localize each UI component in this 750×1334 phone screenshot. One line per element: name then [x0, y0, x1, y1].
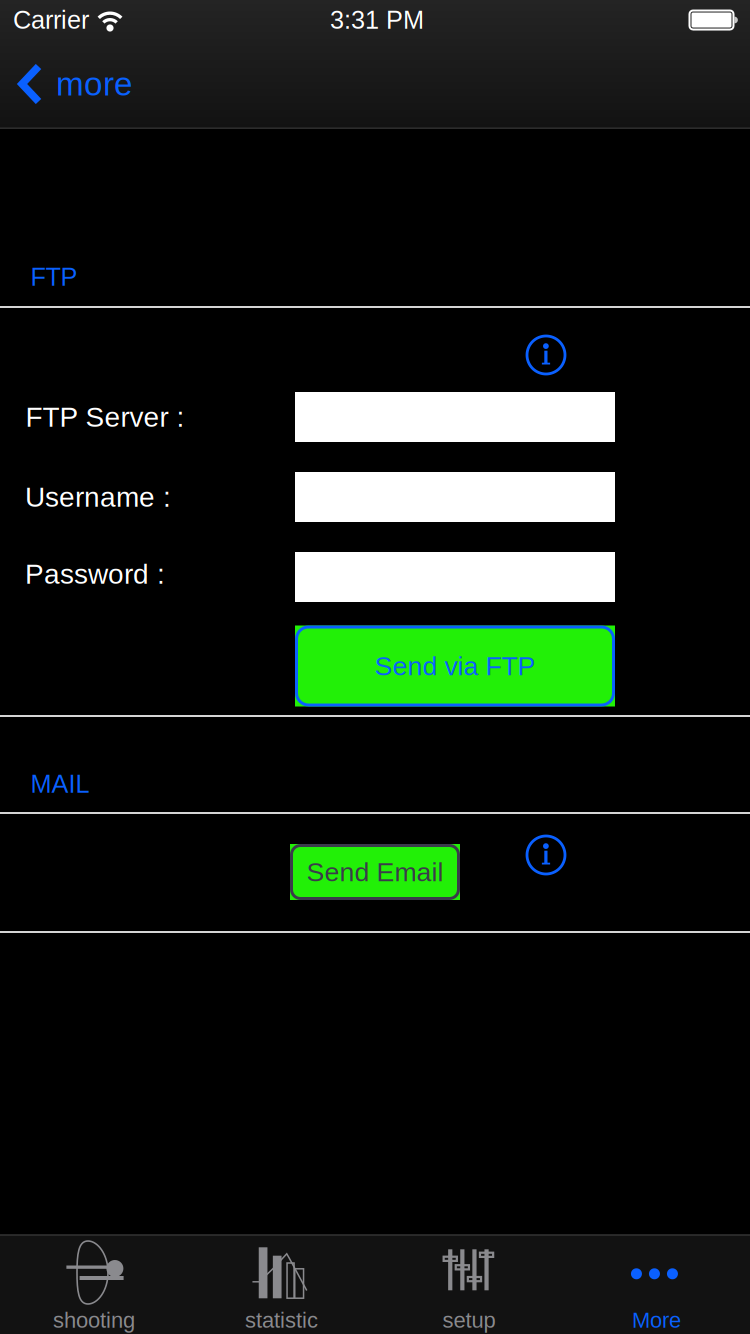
staticText: More: [632, 1308, 681, 1332]
button[interactable]: shooting: [0, 1235, 187, 1334]
staticText: Password :: [25, 558, 165, 590]
staticText: Username :: [25, 481, 171, 513]
button[interactable]: Send Email: [290, 844, 460, 900]
button[interactable]: more: [0, 47, 200, 121]
staticText: Send via FTP: [374, 651, 535, 681]
button[interactable]: statistic: [188, 1235, 375, 1334]
staticText: shooting: [53, 1308, 135, 1332]
staticText: Send Email: [306, 857, 443, 887]
staticText: MAIL: [30, 770, 89, 798]
staticText: Carrier: [13, 6, 89, 34]
staticText: statistic: [245, 1308, 318, 1332]
staticText: 3:31 PM: [330, 6, 424, 34]
button[interactable]: Information: [515, 324, 577, 386]
staticText: setup: [442, 1308, 495, 1332]
button[interactable]: setup: [375, 1235, 562, 1334]
staticText: more: [56, 65, 133, 103]
staticText: FTP: [30, 263, 77, 291]
button[interactable]: Send via FTP: [295, 625, 615, 706]
button[interactable]: More: [563, 1235, 750, 1334]
button[interactable]: Information: [515, 824, 577, 886]
staticText: FTP Server :: [25, 401, 184, 433]
